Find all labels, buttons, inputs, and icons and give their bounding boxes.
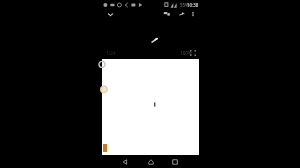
staticText: 10:38 — [187, 2, 199, 8]
button[interactable]: More options — [189, 10, 197, 18]
button[interactable]: Collapse — [106, 10, 115, 19]
button[interactable]: Bookmarks — [163, 10, 171, 18]
button[interactable]: Back — [121, 158, 129, 166]
button[interactable]: Recent apps — [171, 158, 179, 166]
button[interactable]: 1/24 — [106, 50, 116, 56]
button[interactable]: Edit — [150, 36, 159, 45]
button[interactable]: 100% — [180, 50, 192, 56]
staticText: 55% — [180, 2, 189, 8]
button[interactable]: Fullscreen — [190, 50, 196, 56]
button[interactable]: Home — [147, 158, 155, 166]
button[interactable] — [102, 59, 199, 155]
button[interactable]: Share — [178, 10, 186, 18]
